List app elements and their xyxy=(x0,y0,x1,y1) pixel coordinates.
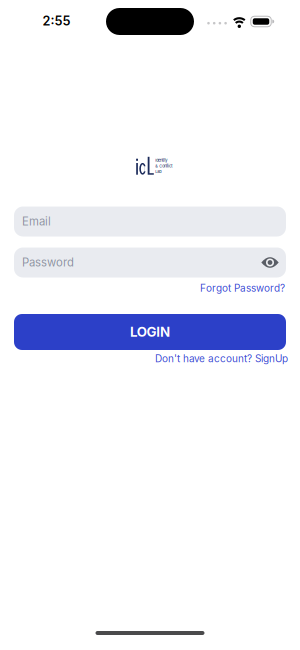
staticText: Password xyxy=(22,256,74,269)
staticText: & Conflict xyxy=(155,164,172,168)
staticText: LOGIN xyxy=(130,324,170,340)
staticText: Email xyxy=(22,215,51,228)
staticText: Identity xyxy=(155,158,167,163)
staticText: Don't have account? SignUp xyxy=(155,352,288,365)
button[interactable]: LOGIN xyxy=(14,314,286,350)
staticText: Forgot Password? xyxy=(200,282,285,294)
button[interactable]: Don't have account? SignUp xyxy=(155,352,288,365)
button[interactable]: Show password xyxy=(260,256,280,268)
staticText: Lab xyxy=(155,169,161,174)
button[interactable]: Forgot Password? xyxy=(200,282,285,294)
staticText: 2:55 xyxy=(42,13,70,29)
